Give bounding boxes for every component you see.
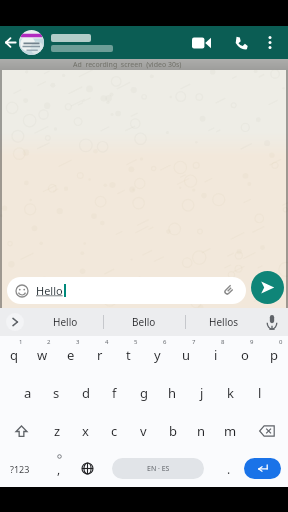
staticText: j — [200, 384, 204, 402]
staticText: w — [37, 346, 48, 364]
staticText: h — [168, 384, 177, 402]
button[interactable]: e — [56, 336, 85, 374]
staticText: r — [97, 346, 103, 364]
staticText: 2 — [47, 338, 51, 346]
button[interactable]: r — [85, 336, 114, 374]
staticText: Ad recording screen (video 30s) — [73, 60, 182, 70]
staticText: b — [169, 422, 177, 440]
staticText: n — [197, 422, 206, 440]
button[interactable]: j — [187, 374, 216, 412]
button[interactable] — [251, 271, 284, 304]
staticText: z — [54, 422, 61, 440]
staticText: f — [112, 384, 117, 402]
staticText: 9 — [250, 338, 254, 346]
staticText: Hello — [36, 283, 63, 298]
button[interactable]: m — [216, 412, 245, 450]
staticText: Hellos — [209, 315, 239, 329]
button[interactable]: k — [216, 374, 245, 412]
staticText: c — [111, 422, 118, 440]
staticText: i — [214, 346, 218, 364]
staticText: 4 — [105, 338, 109, 346]
staticText: , — [57, 461, 61, 477]
button[interactable]: t — [114, 336, 143, 374]
staticText: m — [224, 422, 237, 440]
staticText: 1 — [19, 338, 23, 346]
button[interactable]: , — [46, 450, 72, 487]
staticText: ?123 — [10, 463, 30, 475]
staticText: 0 — [279, 338, 283, 346]
button[interactable]: Hello — [7, 277, 246, 304]
button[interactable]: q — [0, 336, 28, 374]
button[interactable] — [6, 313, 24, 331]
staticText: 6 — [163, 338, 167, 346]
button[interactable] — [51, 34, 113, 52]
button[interactable] — [234, 36, 248, 50]
button[interactable]: x — [71, 412, 100, 450]
button[interactable]: v — [129, 412, 158, 450]
staticText: e — [67, 346, 75, 364]
staticText: k — [227, 384, 234, 402]
button[interactable] — [264, 35, 276, 51]
button[interactable]: w — [28, 336, 56, 374]
button[interactable]: i — [201, 336, 230, 374]
button[interactable] — [245, 412, 288, 450]
button[interactable]: p — [259, 336, 288, 374]
button[interactable] — [192, 36, 212, 50]
button[interactable]: c — [100, 412, 129, 450]
staticText: t — [126, 346, 131, 364]
button[interactable]: h — [158, 374, 187, 412]
button[interactable]: Hellos — [186, 308, 262, 336]
button[interactable]: EN · ES — [112, 458, 204, 479]
button[interactable]: s — [42, 374, 71, 412]
button[interactable] — [244, 458, 281, 479]
staticText: EN · ES — [147, 464, 170, 474]
button[interactable]: ?123 — [0, 450, 40, 487]
staticText: o — [241, 346, 249, 364]
staticText: 8 — [221, 338, 225, 346]
button[interactable] — [0, 412, 43, 450]
button[interactable]: u — [172, 336, 201, 374]
button[interactable]: f — [100, 374, 129, 412]
staticText: 3 — [76, 338, 80, 346]
button[interactable]: g — [129, 374, 158, 412]
staticText: q — [10, 346, 18, 364]
button[interactable]: . — [216, 450, 242, 487]
button[interactable]: b — [158, 412, 187, 450]
staticText: s — [53, 384, 60, 402]
button[interactable]: o — [230, 336, 259, 374]
staticText: x — [82, 422, 89, 440]
button[interactable]: z — [43, 412, 71, 450]
staticText: 7 — [192, 338, 196, 346]
button[interactable] — [266, 315, 278, 330]
button[interactable]: Bello — [104, 308, 184, 336]
button[interactable]: d — [71, 374, 100, 412]
staticText: u — [182, 346, 191, 364]
staticText: Bello — [132, 315, 156, 329]
button[interactable]: a — [14, 374, 42, 412]
button[interactable] — [74, 450, 100, 487]
staticText: d — [82, 384, 90, 402]
staticText: Hello — [53, 315, 78, 329]
staticText: . — [227, 461, 231, 477]
button[interactable]: Hello — [28, 308, 103, 336]
button[interactable]: l — [245, 374, 274, 412]
staticText: l — [258, 384, 262, 402]
staticText: y — [154, 346, 161, 364]
button[interactable] — [19, 30, 44, 55]
button[interactable] — [4, 36, 17, 49]
staticText: v — [140, 422, 147, 440]
staticText: 5 — [134, 338, 138, 346]
staticText: g — [140, 384, 148, 402]
staticText: p — [270, 346, 278, 364]
staticText: a — [24, 384, 32, 402]
button[interactable]: y — [143, 336, 172, 374]
button[interactable]: n — [187, 412, 216, 450]
